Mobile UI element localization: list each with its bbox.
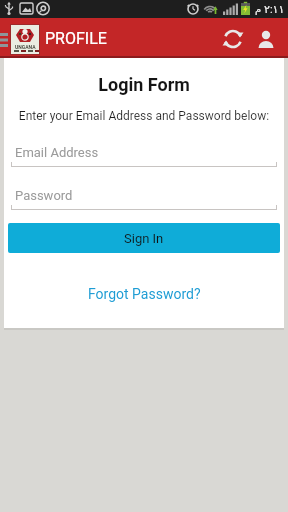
staticText: Login Form [4,74,284,95]
staticText: Enter your Email Address and Password be… [4,109,284,123]
staticText: م [255,4,262,16]
staticText: ٢:١١ [264,3,285,16]
staticText: UNGANA [15,44,36,50]
staticText: Sign In [124,231,164,246]
staticText: Forgot Password? [88,286,201,302]
staticText: Password [15,188,73,203]
button[interactable]: Password [11,181,277,210]
button[interactable] [252,24,280,54]
button[interactable]: Sign In [8,223,280,253]
staticText: Email Address [15,145,99,160]
button[interactable] [218,24,248,54]
staticText: PROFILE [45,29,107,48]
button[interactable]: Email Address [11,138,277,167]
button[interactable]: Forgot Password? [4,283,284,305]
